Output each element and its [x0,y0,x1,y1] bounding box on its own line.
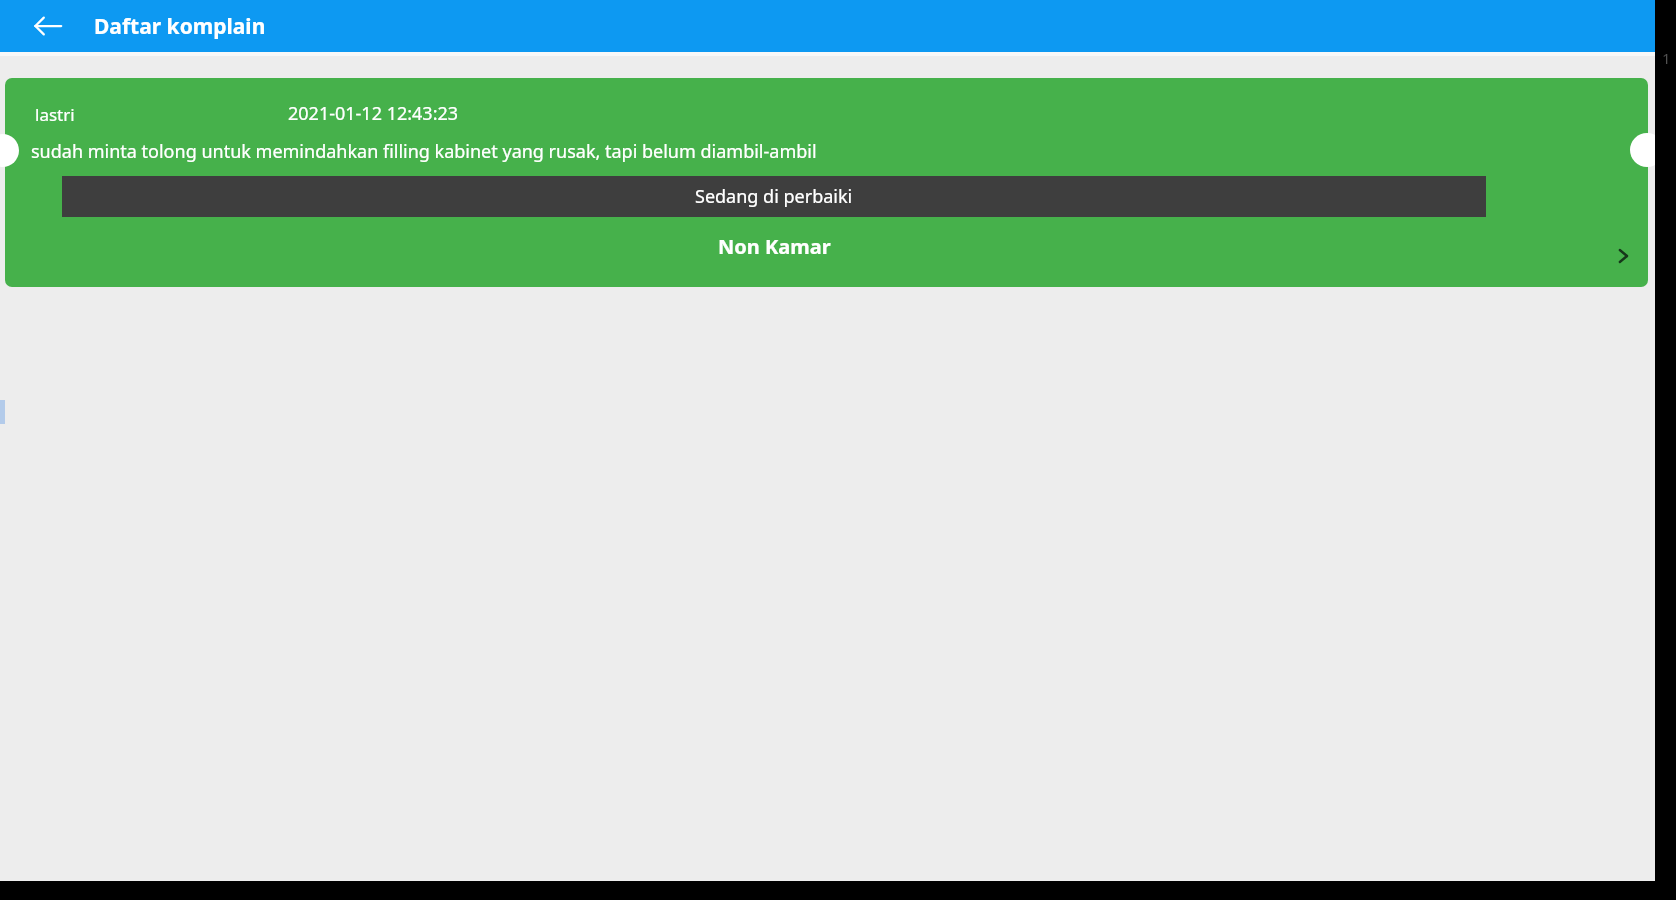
button[interactable]: Sedang di perbaiki [62,176,1486,217]
staticText: Sedang di perbaiki [695,184,853,209]
staticText: Daftar komplain [94,12,266,41]
staticText: lastri [35,103,75,126]
button[interactable]: Back [24,2,72,50]
staticText: 1 [1662,48,1671,68]
staticText: sudah minta tolong untuk memindahkan fil… [31,139,817,164]
staticText: 2021-01-12 12:43:23 [288,101,459,126]
button[interactable]: lastri [5,78,1648,287]
staticText: Non Kamar [718,233,831,260]
button[interactable]: Open detail [1608,241,1638,271]
